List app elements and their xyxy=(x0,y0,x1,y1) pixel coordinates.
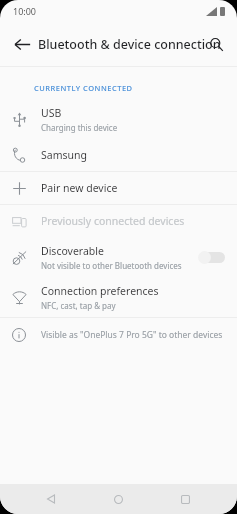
staticText: Bluetooth & device connection xyxy=(38,36,221,53)
staticText: CURRENTLY CONNECTED xyxy=(34,83,133,93)
staticText: USB xyxy=(41,106,62,120)
button[interactable]: Pair new device xyxy=(0,172,237,204)
staticText: Connection preferences xyxy=(41,284,159,298)
staticText: NFC, cast, tap & pay xyxy=(41,300,116,311)
button[interactable]: Search xyxy=(200,28,232,60)
staticText: Visible as "OnePlus 7 Pro 5G" to other d… xyxy=(41,329,223,341)
staticText: Discoverable xyxy=(41,244,104,258)
staticText: Charging this device xyxy=(41,122,118,133)
button[interactable]: Samsung xyxy=(0,139,237,171)
button[interactable]: Discoverable xyxy=(0,237,237,277)
button[interactable]: Discoverable toggle xyxy=(197,248,227,266)
button[interactable]: Previously connected devices xyxy=(0,205,237,237)
button[interactable]: Connection preferences xyxy=(0,277,237,317)
staticText: Not visible to other Bluetooth devices xyxy=(41,260,182,271)
button[interactable]: Back xyxy=(5,27,39,61)
button[interactable]: Recent apps xyxy=(170,484,200,514)
staticText: Pair new device xyxy=(41,181,118,195)
staticText: Samsung xyxy=(41,148,87,162)
button[interactable]: Home xyxy=(103,484,133,514)
staticText: Previously connected devices xyxy=(41,214,185,228)
button[interactable]: Back xyxy=(36,484,66,514)
staticText: 10:00 xyxy=(13,5,37,17)
button[interactable]: USB xyxy=(0,99,237,139)
